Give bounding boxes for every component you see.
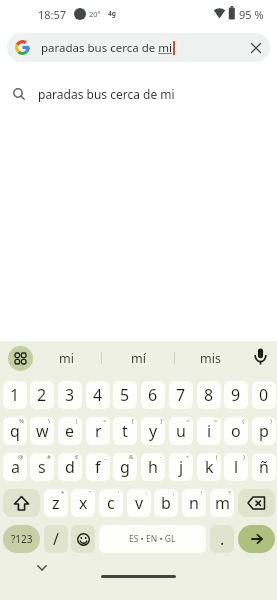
button[interactable]: z xyxy=(44,489,68,517)
button[interactable]: mi xyxy=(37,341,95,375)
staticText: z xyxy=(52,492,60,514)
button[interactable]: j xyxy=(169,453,193,481)
button[interactable]: 1 xyxy=(3,381,27,409)
staticText: . xyxy=(220,528,225,550)
button[interactable] xyxy=(37,565,47,571)
button[interactable]: y xyxy=(141,417,165,445)
button[interactable]: f xyxy=(86,453,110,481)
button[interactable]: u xyxy=(169,417,193,445)
button[interactable]: m xyxy=(210,489,234,517)
button[interactable]: r xyxy=(86,417,110,445)
button[interactable] xyxy=(238,525,275,553)
staticText: 4g xyxy=(108,9,116,18)
staticText: % xyxy=(19,417,24,425)
staticText: / xyxy=(53,528,59,550)
button[interactable]: c xyxy=(99,489,123,517)
staticText: x xyxy=(79,492,88,514)
button[interactable]: 5 xyxy=(113,381,137,409)
button[interactable] xyxy=(8,346,33,371)
button[interactable]: p xyxy=(252,417,276,445)
button[interactable]: o xyxy=(224,417,248,445)
staticText: b xyxy=(161,492,171,514)
staticText: l xyxy=(234,456,239,478)
button[interactable]: i xyxy=(197,417,221,445)
button[interactable]: 0 xyxy=(252,381,276,409)
button[interactable]: . xyxy=(210,525,234,553)
staticText: ( xyxy=(216,453,218,461)
staticText: 6 xyxy=(148,384,158,406)
staticText: \ xyxy=(48,417,51,425)
staticText: * xyxy=(61,489,65,497)
button[interactable]: q xyxy=(3,417,27,445)
button[interactable]: d xyxy=(58,453,82,481)
staticText: e xyxy=(65,420,75,442)
button[interactable]: 6 xyxy=(141,381,165,409)
staticText: } xyxy=(270,417,273,425)
button[interactable]: / xyxy=(44,525,68,553)
button[interactable]: g xyxy=(113,453,137,481)
button[interactable]: mí xyxy=(109,341,167,375)
staticText: i xyxy=(207,420,212,442)
button[interactable]: ES • EN • GL xyxy=(99,525,206,553)
staticText: : xyxy=(146,489,148,497)
staticText: & xyxy=(129,453,134,461)
staticText: j xyxy=(179,456,184,478)
staticText: 9 xyxy=(231,384,241,406)
button[interactable] xyxy=(251,43,261,53)
button[interactable]: 4 xyxy=(86,381,110,409)
staticText: @ xyxy=(18,453,24,461)
button[interactable]: w xyxy=(30,417,54,445)
staticText: ! xyxy=(201,489,203,497)
staticText: paradas bus cerca de mi xyxy=(41,40,172,56)
button[interactable]: ñ xyxy=(252,453,276,481)
button[interactable] xyxy=(238,489,275,517)
staticText: 20° xyxy=(89,9,101,19)
button[interactable]: 8 xyxy=(197,381,221,409)
button[interactable]: paradas bus cerca de mi xyxy=(0,78,277,110)
staticText: ; xyxy=(173,489,175,497)
staticText: { xyxy=(242,417,245,425)
staticText: - xyxy=(160,453,162,461)
staticText: ?123 xyxy=(11,532,33,546)
button[interactable]: h xyxy=(141,453,165,481)
button[interactable]: e xyxy=(58,417,82,445)
staticText: 95 % xyxy=(239,7,264,22)
button[interactable]: x xyxy=(71,489,95,517)
staticText: 8 xyxy=(204,384,214,406)
button[interactable]: a xyxy=(3,453,27,481)
button[interactable]: n xyxy=(182,489,206,517)
staticText: | xyxy=(75,417,79,425)
staticText: u xyxy=(176,420,186,442)
button[interactable]: t xyxy=(113,417,137,445)
button[interactable]: 2 xyxy=(30,381,54,409)
button[interactable] xyxy=(3,489,40,517)
button[interactable]: mis xyxy=(181,341,239,375)
staticText: k xyxy=(205,456,214,478)
button[interactable] xyxy=(71,525,95,553)
button[interactable]: k xyxy=(197,453,221,481)
button[interactable]: b xyxy=(154,489,178,517)
button[interactable]: paradas bus cerca de mi xyxy=(7,33,270,62)
staticText: mí xyxy=(131,350,146,367)
staticText: 0 xyxy=(259,384,269,406)
button[interactable] xyxy=(101,575,176,578)
staticText: mis xyxy=(200,350,221,367)
staticText: ) xyxy=(243,453,245,461)
button[interactable]: v xyxy=(127,489,151,517)
button[interactable]: s xyxy=(30,453,54,481)
staticText: p xyxy=(259,420,269,442)
staticText: g xyxy=(120,456,130,478)
staticText: mi xyxy=(59,350,74,367)
button[interactable]: l xyxy=(224,453,248,481)
staticText: ñ xyxy=(259,456,269,478)
staticText: q xyxy=(10,420,20,442)
staticText: [ xyxy=(132,417,134,425)
button[interactable] xyxy=(253,348,268,368)
button[interactable]: 3 xyxy=(58,381,82,409)
staticText: + xyxy=(186,453,190,461)
button[interactable]: 9 xyxy=(224,381,248,409)
staticText: d xyxy=(65,456,75,478)
staticText: " xyxy=(89,489,92,497)
button[interactable]: 7 xyxy=(169,381,193,409)
button[interactable]: ?123 xyxy=(3,525,40,553)
